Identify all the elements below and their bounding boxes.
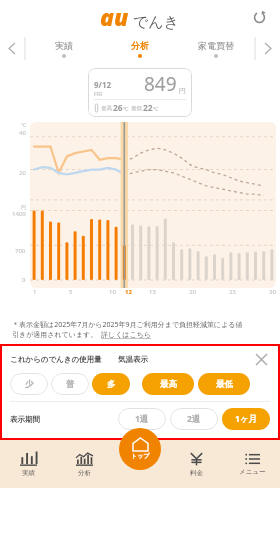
staticText: 15 [149, 288, 156, 296]
staticText: 気温表示 [118, 355, 148, 364]
button[interactable]: 家電買替 [178, 33, 254, 64]
button[interactable]: Refresh [247, 5, 271, 29]
staticText: 円 [21, 204, 26, 210]
staticText: トップ [131, 452, 150, 460]
button[interactable]: 1ヶ月 [222, 408, 270, 430]
staticText: 25 [229, 288, 236, 296]
staticText: 詳しくはこちら [101, 330, 151, 339]
staticText: 料金 [190, 469, 203, 477]
staticText: 40 [19, 129, 26, 137]
staticText: 20 [189, 288, 196, 296]
staticText: 表示期間 [10, 415, 40, 424]
button[interactable]: 2週 [170, 408, 218, 430]
button[interactable]: 分析 [102, 33, 178, 64]
staticText: 1400 [12, 210, 26, 218]
button[interactable]: 多 [92, 373, 130, 395]
staticText: 分析 [78, 469, 91, 477]
staticText: ℃ [153, 105, 159, 112]
staticText: 実績 [22, 469, 35, 477]
staticText: 最高 [160, 379, 177, 390]
staticText: これからのでんきの使用量 [10, 355, 102, 364]
button[interactable]: 普 [51, 373, 89, 395]
staticText: 20 [19, 169, 26, 177]
button[interactable]: 分析 [56, 440, 112, 488]
staticText: 0 [22, 276, 26, 284]
staticText: 22 [143, 102, 153, 114]
staticText: ＊表示金額は2025年7月から2025年9月ご利用分まで負担軽減策による値 [12, 320, 243, 330]
staticText: au [100, 1, 129, 32]
staticText: 最低 [216, 379, 233, 390]
staticText: 26 [113, 102, 123, 114]
staticText: でんき [133, 13, 180, 32]
staticText: 12 [125, 288, 132, 296]
button[interactable]: 最高 [142, 373, 194, 395]
button[interactable]: 実績 [26, 33, 102, 64]
staticText: 2週 [187, 413, 201, 425]
staticText: 5 [69, 288, 73, 296]
button[interactable]: 最低 [198, 373, 250, 395]
staticText: 普 [66, 379, 75, 390]
button[interactable]: メニュー [224, 440, 280, 488]
button[interactable]: 少 [10, 373, 48, 395]
staticText: 1 [33, 288, 37, 296]
staticText: 700 [15, 247, 26, 255]
staticText: 最高 [101, 105, 112, 112]
staticText: 849 [144, 71, 177, 97]
button[interactable]: Next tab [256, 33, 280, 64]
button[interactable]: 料金 [168, 440, 224, 488]
staticText: 1週 [135, 413, 149, 425]
button[interactable]: Previous tab [0, 33, 24, 64]
staticText: ℃ [21, 122, 26, 129]
staticText: 分析 [131, 40, 149, 51]
staticText: FRI [94, 90, 103, 97]
staticText: 30 [269, 288, 276, 296]
button[interactable]: 1週 [118, 408, 166, 430]
button[interactable]: 詳しくはこちら [101, 330, 151, 339]
staticText: 実績 [55, 40, 73, 51]
staticText: 引きが適用されています。 [12, 330, 98, 339]
staticText: 1ヶ月 [235, 413, 258, 425]
staticText: 円 [179, 86, 186, 95]
button[interactable]: Close [252, 350, 270, 368]
staticText: メニュー [239, 468, 266, 476]
staticText: 9/12 [94, 79, 112, 90]
staticText: 最低 [131, 105, 142, 112]
button[interactable]: トップ [119, 428, 161, 470]
staticText: ℃ [123, 105, 129, 112]
staticText: 10 [109, 288, 116, 296]
staticText: 少 [25, 379, 34, 390]
staticText: 家電買替 [198, 40, 234, 51]
button[interactable]: 実績 [0, 440, 56, 488]
staticText: 多 [107, 379, 116, 390]
